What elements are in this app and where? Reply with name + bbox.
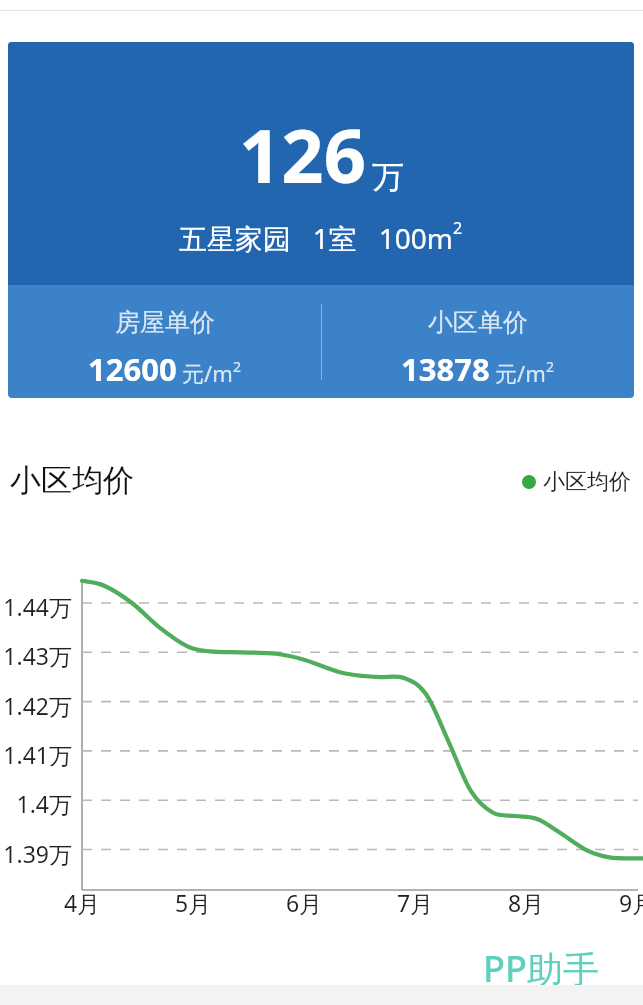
staticText: 2	[546, 357, 555, 376]
staticText: 小区均价	[543, 468, 631, 496]
staticText: 元/m	[182, 358, 233, 388]
staticText: 房屋单价	[115, 307, 215, 338]
staticText: 1.42万	[0, 690, 72, 721]
button[interactable]: 小区单价	[321, 285, 634, 398]
staticText: 1.44万	[0, 591, 72, 622]
staticText: 1.41万	[0, 739, 72, 770]
staticText: 小区均价	[10, 461, 134, 500]
staticText: 9月	[607, 887, 643, 918]
staticText: 6月	[274, 887, 334, 918]
staticText: 2	[453, 217, 463, 239]
staticText: 1.4万	[0, 788, 72, 819]
button[interactable]: 房屋单价	[8, 285, 321, 398]
staticText: 五星家园 1室 100m	[179, 219, 453, 257]
staticText: 4月	[52, 887, 112, 918]
staticText: 小区单价	[428, 307, 528, 338]
staticText: 2	[233, 357, 242, 376]
staticText: 1.39万	[0, 838, 72, 869]
staticText: 8月	[496, 887, 556, 918]
button[interactable]: 126	[8, 42, 634, 398]
staticText: PP助手	[483, 944, 599, 993]
button[interactable]: 小区均价	[522, 468, 631, 496]
staticText: 元/m	[495, 358, 546, 388]
staticText: 12600	[88, 348, 177, 390]
staticText: 7月	[385, 887, 445, 918]
staticText: 126	[239, 104, 366, 205]
staticText: 万	[372, 157, 404, 197]
staticText: 5月	[163, 887, 223, 918]
staticText: 1.43万	[0, 640, 72, 671]
staticText: 13878	[401, 348, 490, 390]
